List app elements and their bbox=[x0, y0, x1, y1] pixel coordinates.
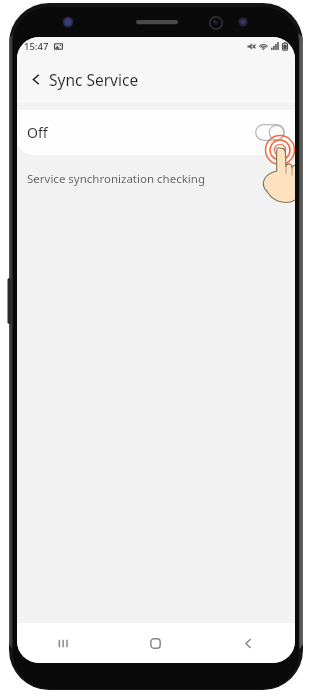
staticText: Service synchronization checking bbox=[27, 171, 205, 187]
button[interactable]: Back bbox=[23, 66, 49, 92]
button[interactable]: Toggle sync service bbox=[255, 124, 285, 141]
button[interactable]: Recents bbox=[17, 623, 109, 663]
staticText: Off bbox=[27, 123, 48, 142]
staticText: 15:47 bbox=[24, 40, 49, 53]
button[interactable]: Home bbox=[109, 623, 202, 663]
button[interactable]: Back bbox=[202, 623, 295, 663]
staticText: Sync Service bbox=[49, 69, 139, 90]
button[interactable]: Off bbox=[17, 110, 295, 155]
